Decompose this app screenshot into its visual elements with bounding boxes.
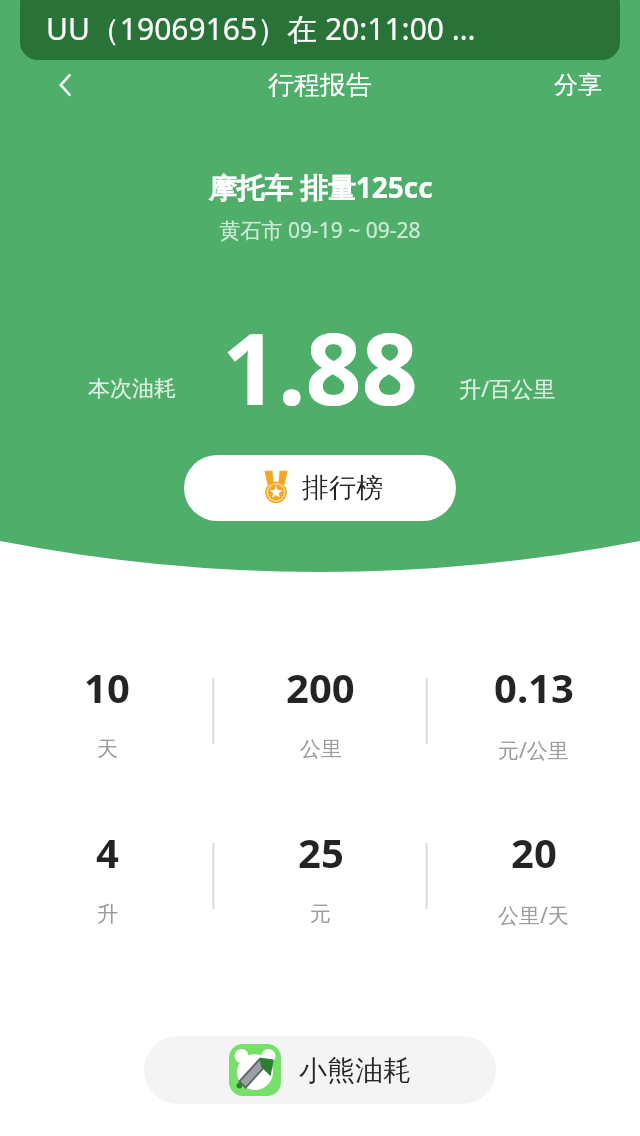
staticText: 200 — [286, 660, 355, 714]
staticText: 元/公里 — [498, 736, 569, 765]
staticText: 1.88 — [222, 300, 418, 415]
staticText: 25 — [298, 825, 344, 879]
button[interactable]: 小熊油耗 — [144, 1036, 496, 1104]
staticText: 摩托车 排量125cc — [208, 168, 433, 206]
staticText: 20 — [511, 825, 557, 879]
staticText: 公里/天 — [498, 901, 569, 930]
staticText: 公里 — [300, 736, 342, 762]
button[interactable]: 排行榜 — [184, 455, 456, 521]
staticText: 10 — [84, 660, 130, 714]
staticText: 排行榜 — [302, 471, 383, 505]
staticText: 小熊油耗 — [299, 1053, 411, 1088]
staticText: 行程报告 — [268, 69, 372, 102]
staticText: 分享 — [554, 70, 602, 100]
button[interactable]: 分享 — [544, 62, 612, 108]
staticText: 0.13 — [494, 660, 574, 714]
staticText: 天 — [97, 736, 118, 762]
button[interactable]: Back — [40, 59, 92, 111]
staticText: 升 — [97, 901, 118, 927]
staticText: 4 — [96, 825, 119, 879]
staticText: 元 — [310, 901, 331, 927]
staticText: 本次油耗 — [88, 375, 176, 403]
staticText: 升/百公里 — [459, 373, 556, 403]
staticText: 黄石市 09-19 ~ 09-28 — [219, 216, 421, 245]
staticText: UU（19069165）在 20:11:00 … — [46, 8, 476, 49]
button[interactable]: UU（19069165）在 20:11:00 … — [20, 0, 620, 60]
